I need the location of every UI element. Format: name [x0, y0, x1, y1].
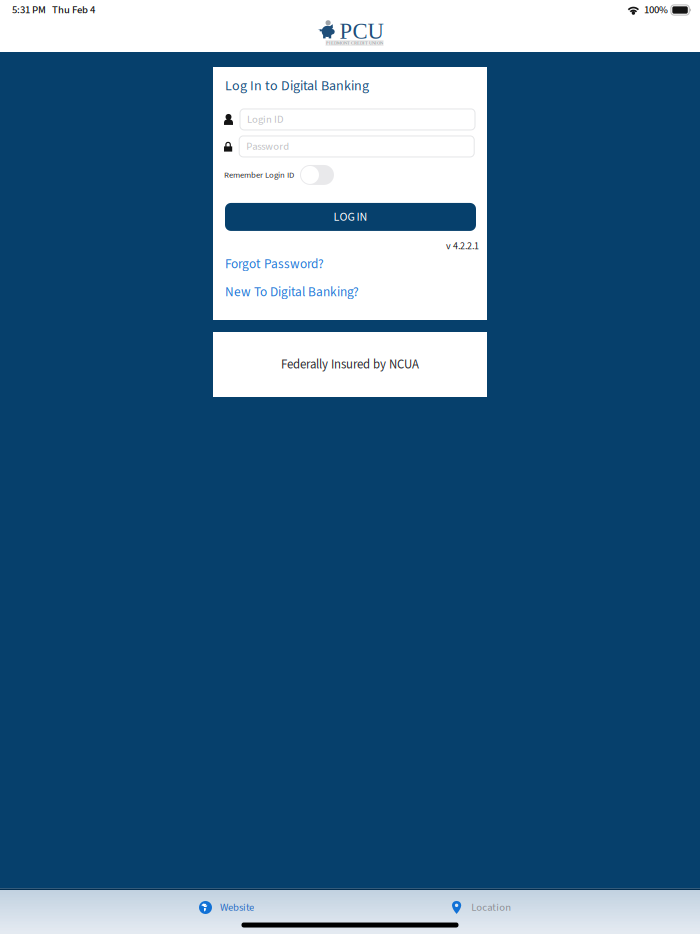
staticText: Federally Insured by NCUA [281, 355, 419, 374]
button[interactable]: New To Digital Banking? [213, 281, 487, 303]
staticText: PIEDMONT CREDIT UNION [326, 40, 383, 45]
button[interactable]: Website [0, 893, 321, 921]
staticText: PCU [339, 18, 383, 43]
button[interactable]: Forgot Password? [213, 253, 487, 275]
staticText: LOG IN [333, 208, 367, 225]
staticText: Website [220, 900, 254, 915]
staticText: Remember Login ID [224, 169, 294, 181]
staticText: Password [246, 139, 289, 154]
button[interactable]: Location [321, 893, 574, 921]
staticText: New To Digital Banking? [225, 283, 359, 302]
staticText: Log In to Digital Banking [225, 76, 369, 96]
staticText: Forgot Password? [225, 255, 324, 274]
staticText: v 4.2.2.1 [446, 239, 479, 253]
staticText: Location [471, 900, 511, 915]
staticText: 5:31 PM [12, 2, 46, 18]
button[interactable]: Remember Login ID [294, 165, 334, 185]
staticText: Login ID [247, 112, 284, 127]
staticText: 100% [644, 2, 668, 18]
staticText: Thu Feb 4 [52, 2, 95, 18]
button[interactable]: LOG IN [225, 203, 476, 231]
